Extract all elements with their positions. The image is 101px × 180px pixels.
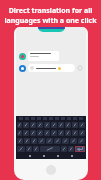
- button[interactable]: [19, 51, 83, 61]
- button[interactable]: [30, 130, 36, 136]
- button[interactable]: [17, 138, 23, 144]
- button[interactable]: [46, 138, 53, 144]
- button[interactable]: [44, 130, 50, 136]
- button[interactable]: [24, 138, 30, 144]
- button[interactable]: [17, 122, 22, 128]
- button[interactable]: [26, 146, 32, 152]
- button[interactable]: Voice input: [19, 64, 83, 72]
- button[interactable]: [51, 130, 57, 136]
- button[interactable]: [61, 146, 67, 152]
- button[interactable]: [51, 122, 57, 128]
- button[interactable]: [72, 122, 78, 128]
- button[interactable]: [37, 130, 43, 136]
- button[interactable]: [72, 130, 78, 136]
- button[interactable]: [68, 146, 74, 152]
- button[interactable]: [58, 130, 64, 136]
- button[interactable]: [44, 122, 50, 128]
- button[interactable]: [23, 130, 29, 136]
- button[interactable]: [65, 122, 71, 128]
- button[interactable]: [40, 146, 60, 152]
- button[interactable]: [58, 122, 64, 128]
- button[interactable]: [78, 138, 85, 144]
- button[interactable]: [79, 122, 85, 128]
- button[interactable]: [79, 130, 85, 136]
- button[interactable]: [70, 138, 77, 144]
- button[interactable]: Enter: [75, 146, 85, 152]
- button[interactable]: [23, 122, 29, 128]
- button[interactable]: [17, 146, 25, 152]
- staticText: Direct translation for all languages wit…: [4, 6, 97, 26]
- button[interactable]: [65, 130, 71, 136]
- button[interactable]: Home: [46, 165, 56, 175]
- button[interactable]: [17, 130, 22, 136]
- button[interactable]: [62, 138, 69, 144]
- button[interactable]: [54, 138, 61, 144]
- button[interactable]: [38, 27, 65, 32]
- button[interactable]: [30, 122, 36, 128]
- button[interactable]: [37, 122, 43, 128]
- button[interactable]: [33, 146, 39, 152]
- button[interactable]: Voice input: [77, 65, 83, 71]
- button[interactable]: [31, 138, 37, 144]
- button[interactable]: [38, 138, 45, 144]
